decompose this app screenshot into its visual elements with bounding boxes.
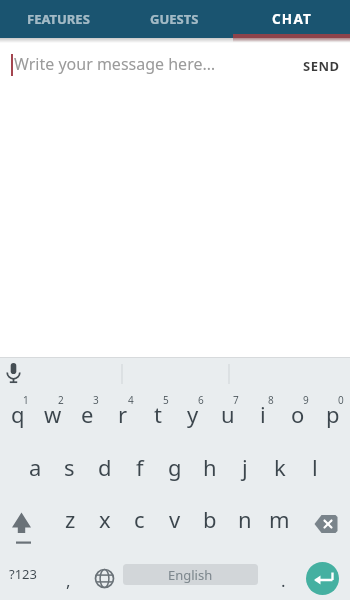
button[interactable]: z xyxy=(53,495,87,547)
button[interactable]: , xyxy=(46,547,91,600)
staticText: u xyxy=(221,399,235,429)
staticText: CHAT xyxy=(272,10,312,28)
button[interactable]: d xyxy=(87,442,122,495)
button[interactable]: j xyxy=(227,442,262,495)
button[interactable]: FEATURES xyxy=(0,0,116,38)
button[interactable]: f xyxy=(122,442,157,495)
staticText: English xyxy=(168,566,213,584)
button[interactable]: r xyxy=(105,390,140,442)
staticText: 5 xyxy=(163,393,169,407)
staticText: v xyxy=(169,504,181,534)
button[interactable]: a xyxy=(18,442,52,495)
staticText: 9 xyxy=(303,393,309,407)
staticText: k xyxy=(274,452,286,482)
button[interactable] xyxy=(306,562,339,595)
staticText: i xyxy=(260,399,266,429)
staticText: 4 xyxy=(128,393,134,407)
staticText: x xyxy=(99,504,111,534)
staticText: e xyxy=(81,399,94,429)
button[interactable]: l xyxy=(297,442,332,495)
button[interactable]: . xyxy=(265,547,301,600)
staticText: d xyxy=(98,452,112,482)
staticText: c xyxy=(134,504,145,534)
button[interactable]: p xyxy=(315,390,350,442)
staticText: 2 xyxy=(58,393,64,407)
staticText: GUESTS xyxy=(150,10,199,28)
button[interactable]: k xyxy=(262,442,297,495)
staticText: 6 xyxy=(198,393,204,407)
staticText: ?123 xyxy=(9,565,37,583)
button[interactable]: u xyxy=(210,390,245,442)
staticText: a xyxy=(29,452,42,482)
staticText: f xyxy=(136,452,144,482)
button[interactable]: w xyxy=(35,390,70,442)
staticText: q xyxy=(11,399,25,429)
button[interactable]: e xyxy=(70,390,105,442)
staticText: m xyxy=(269,504,290,534)
staticText: 7 xyxy=(233,393,239,407)
staticText: 3 xyxy=(93,393,99,407)
button[interactable]: y xyxy=(175,390,210,442)
button[interactable]: t xyxy=(140,390,175,442)
button[interactable]: o xyxy=(280,390,315,442)
staticText: SEND xyxy=(303,57,340,75)
button[interactable]: m xyxy=(262,495,297,547)
staticText: b xyxy=(203,504,217,534)
button[interactable]: Write your message here… xyxy=(14,53,216,75)
staticText: FEATURES xyxy=(27,10,90,28)
button[interactable]: x xyxy=(87,495,122,547)
staticText: l xyxy=(312,452,318,482)
button[interactable] xyxy=(0,358,28,390)
staticText: o xyxy=(291,399,305,429)
staticText: 8 xyxy=(268,393,274,407)
button[interactable]: v xyxy=(157,495,192,547)
staticText: w xyxy=(44,399,62,429)
staticText: , xyxy=(66,569,71,592)
staticText: z xyxy=(65,504,76,534)
staticText: Write your message here… xyxy=(14,53,216,75)
button[interactable]: i xyxy=(245,390,280,442)
staticText: n xyxy=(238,504,252,534)
button[interactable]: CHAT xyxy=(233,0,350,38)
staticText: h xyxy=(203,452,217,482)
button[interactable]: n xyxy=(227,495,262,547)
button[interactable]: s xyxy=(52,442,87,495)
staticText: 1 xyxy=(23,393,29,407)
staticText: . xyxy=(281,569,286,592)
button[interactable] xyxy=(0,495,53,547)
button[interactable]: g xyxy=(157,442,192,495)
staticText: g xyxy=(168,452,182,482)
button[interactable]: b xyxy=(192,495,227,547)
button[interactable]: ?123 xyxy=(0,547,46,600)
staticText: j xyxy=(242,452,248,482)
button[interactable]: h xyxy=(192,442,227,495)
button[interactable]: GUESTS xyxy=(116,0,233,38)
button[interactable] xyxy=(87,547,123,600)
staticText: 0 xyxy=(338,393,344,407)
button[interactable]: q xyxy=(0,390,35,442)
staticText: p xyxy=(326,399,340,429)
button[interactable] xyxy=(297,495,350,547)
staticText: y xyxy=(187,399,199,429)
button[interactable]: SEND xyxy=(303,57,340,75)
staticText: r xyxy=(118,399,128,429)
button[interactable]: c xyxy=(122,495,157,547)
staticText: t xyxy=(154,399,162,429)
button[interactable]: English xyxy=(123,564,258,585)
staticText: s xyxy=(64,452,75,482)
